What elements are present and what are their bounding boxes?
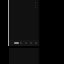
button[interactable]: More options [33, 1, 38, 9]
button[interactable]: Home [14, 42, 19, 44]
